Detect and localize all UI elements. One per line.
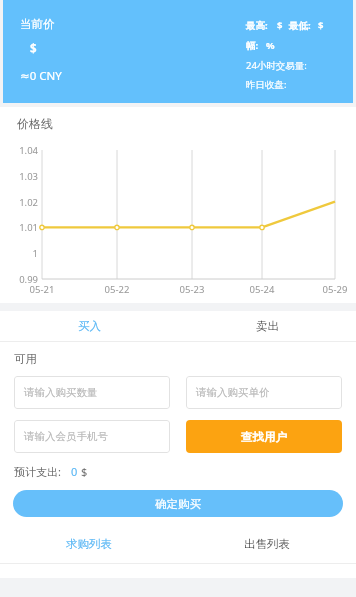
staticText: $ [30, 41, 37, 57]
staticText: 1 [4, 247, 38, 260]
staticText: 1.04 [4, 144, 38, 157]
staticText: 昨日收盘: [246, 78, 287, 91]
button[interactable]: 确定购买 [13, 490, 343, 517]
staticText: 0.99 [4, 273, 38, 286]
staticText: 05-24 [245, 283, 279, 296]
staticText: 查找用户 [241, 430, 287, 444]
staticText: 05-23 [175, 283, 209, 296]
staticText: 幅: [246, 39, 259, 52]
staticText: 1.02 [4, 196, 38, 209]
staticText: 0 [71, 464, 78, 479]
staticText: % [266, 39, 275, 52]
button[interactable]: 买入 [0, 311, 178, 341]
button[interactable]: 请输入购买单价 [186, 376, 342, 409]
button[interactable]: 请输入会员手机号 [14, 420, 170, 453]
staticText: 预计支出: [14, 464, 61, 479]
staticText: 卖出 [256, 319, 279, 333]
staticText: ≈0 CNY [20, 68, 62, 84]
button[interactable]: 请输入购买数量 [14, 376, 170, 409]
button[interactable]: 查找用户 [186, 420, 342, 453]
staticText: 1.01 [4, 221, 38, 234]
staticText: 05-29 [318, 283, 352, 296]
staticText: 最高: [246, 19, 268, 32]
staticText: 可用 [14, 352, 37, 366]
button[interactable]: 出售列表 [178, 531, 356, 557]
staticText: 求购列表 [66, 537, 112, 551]
staticText: 最低: [289, 19, 311, 32]
staticText: 24小时交易量: [246, 59, 307, 72]
button[interactable]: 卖出 [178, 311, 356, 341]
staticText: 请输入购买数量 [24, 386, 98, 399]
button[interactable]: 求购列表 [0, 531, 178, 557]
staticText: 出售列表 [244, 537, 290, 551]
staticText: 当前价 [20, 17, 55, 31]
staticText: $ [81, 464, 88, 479]
staticText: 请输入会员手机号 [24, 430, 108, 443]
staticText: 请输入购买单价 [196, 386, 270, 399]
staticText: 确定购买 [155, 497, 201, 511]
staticText: 05-22 [100, 283, 134, 296]
staticText: 05-21 [25, 283, 59, 296]
staticText: 买入 [78, 319, 101, 333]
staticText: 1.03 [4, 170, 38, 183]
staticText: 价格线 [17, 116, 53, 131]
staticText: $ [277, 19, 283, 32]
staticText: $ [318, 19, 324, 32]
